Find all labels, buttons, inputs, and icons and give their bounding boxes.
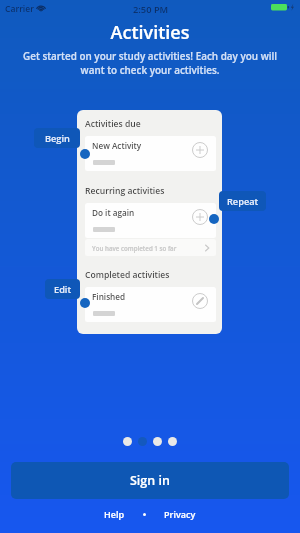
staticText: Edit — [54, 283, 72, 296]
other: Add recurring activity — [192, 209, 208, 225]
staticText: Begin — [45, 132, 70, 145]
staticText: 2:50 PM — [133, 3, 169, 16]
button[interactable] — [138, 437, 147, 446]
staticText: Get started on your study activities! Ea… — [11, 49, 289, 77]
staticText: Help — [104, 508, 125, 520]
staticText: Activities due — [85, 118, 141, 130]
button[interactable]: Help — [100, 504, 129, 524]
staticText: Completed activities — [85, 269, 170, 281]
other: Edit finished activity — [192, 293, 208, 309]
staticText: Carrier — [5, 3, 34, 15]
button[interactable]: New Activity — [85, 136, 216, 171]
staticText: Recurring activities — [85, 185, 165, 197]
other: Add new activity — [192, 142, 208, 158]
button[interactable] — [153, 437, 162, 446]
button[interactable]: Do it again — [85, 203, 216, 238]
staticText: You have completed 1 so far — [92, 244, 177, 252]
button[interactable]: Repeat — [219, 191, 266, 211]
button[interactable]: Finished — [85, 287, 216, 322]
button[interactable]: Privacy — [160, 504, 200, 524]
staticText: Repeat — [227, 195, 259, 208]
button[interactable] — [168, 437, 177, 446]
button[interactable]: You have completed 1 so far — [85, 239, 216, 256]
staticText: New Activity — [92, 140, 142, 151]
other: Open — [204, 245, 210, 251]
staticText: Privacy — [164, 508, 196, 520]
button[interactable]: Edit — [45, 279, 80, 299]
staticText: Do it again — [92, 207, 135, 218]
button[interactable]: Sign in — [11, 462, 289, 499]
staticText: Sign in — [130, 472, 170, 489]
button[interactable] — [123, 437, 132, 446]
button[interactable]: Begin — [34, 128, 80, 148]
staticText: Activities — [0, 20, 300, 45]
staticText: Finished — [92, 291, 126, 302]
